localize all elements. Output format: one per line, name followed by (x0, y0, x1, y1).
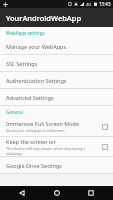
button[interactable]: Manage your WebApps (0, 38, 113, 54)
button[interactable]: Recent apps (78, 186, 104, 200)
button[interactable]: Authentication Settings (0, 72, 113, 88)
staticText: YourAndroidWebApp (6, 13, 82, 23)
staticText: SSL Settings (6, 60, 38, 67)
button[interactable]: Back (9, 186, 35, 200)
staticText: The device will stay awake when displayi… (6, 146, 98, 156)
staticText: Google Drive Settings (6, 162, 62, 169)
staticText: Show your webapps in fullscreen (6, 128, 65, 133)
button[interactable]: Immersive Full Screen Mode (101, 123, 108, 130)
button[interactable]: Keep the screen on (101, 143, 108, 150)
staticText: 4G (86, 2, 92, 7)
staticText: WebApps settings (6, 30, 45, 36)
button[interactable]: SSL Settings (0, 55, 113, 71)
button[interactable]: Keep the screen on (0, 137, 113, 156)
button[interactable]: Advanced Settings (0, 89, 113, 105)
button[interactable]: Immersive Full Screen Mode (0, 117, 113, 136)
staticText: 15:43 (99, 1, 111, 7)
button[interactable]: Google Drive Settings (0, 157, 113, 173)
staticText: Immersive Full Screen Mode (6, 120, 80, 127)
staticText: Advanced Settings (6, 94, 54, 101)
button[interactable]: Home (44, 186, 70, 200)
staticText: General (6, 109, 23, 115)
staticText: Manage your WebApps (6, 43, 67, 50)
staticText: Keep the screen on (6, 138, 56, 145)
staticText: Authentication Settings (6, 77, 67, 84)
